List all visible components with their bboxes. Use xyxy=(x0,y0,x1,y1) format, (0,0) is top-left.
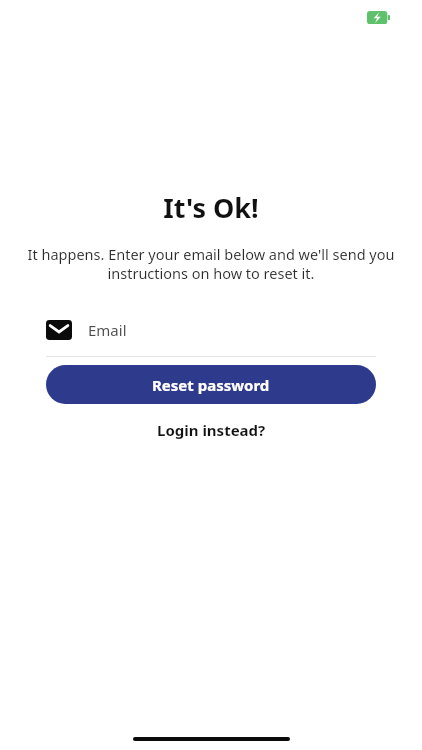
other: Battery charging xyxy=(367,11,390,24)
staticText: Login instead? xyxy=(157,420,266,440)
button[interactable]: Email xyxy=(46,313,376,347)
staticText: Reset password xyxy=(152,375,270,395)
staticText: Email xyxy=(88,320,127,340)
button[interactable]: Login instead? xyxy=(143,414,280,446)
button[interactable]: Reset password xyxy=(46,365,376,404)
staticText: It's Ok! xyxy=(163,189,259,226)
staticText: It happens. Enter your email below and w… xyxy=(20,244,402,283)
